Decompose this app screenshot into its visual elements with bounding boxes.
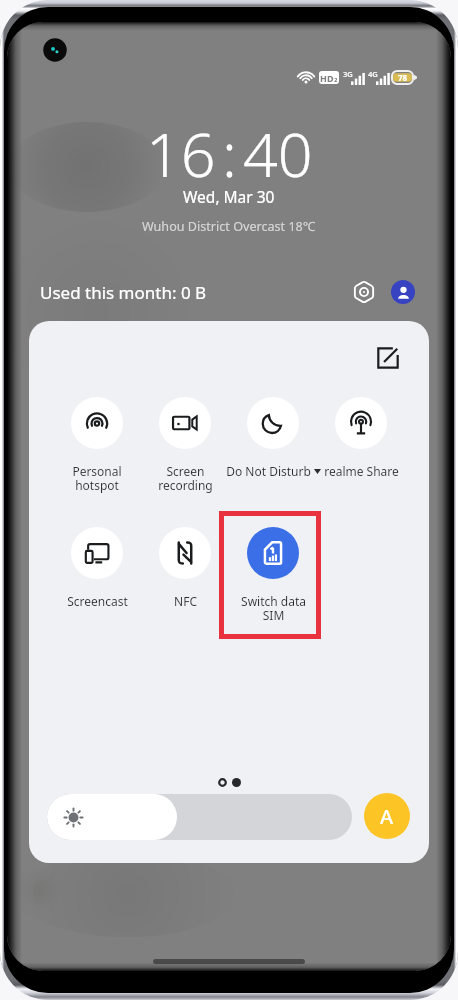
staticText: NFC <box>174 593 197 609</box>
staticText: Screen recording <box>158 463 213 494</box>
staticText: realme Share <box>324 463 399 479</box>
button[interactable]: Do Not Disturb <box>229 397 317 495</box>
button[interactable]: Screen recording <box>141 397 229 495</box>
staticText: A <box>380 803 394 830</box>
staticText: 4G <box>368 69 378 79</box>
staticText: Do Not Disturb <box>226 463 311 479</box>
staticText: : <box>222 112 237 195</box>
button[interactable]: Brightness <box>47 794 352 840</box>
staticText: Used this month: 0 B <box>40 281 207 304</box>
button[interactable]: NFC <box>141 527 229 625</box>
button[interactable]: Account <box>391 280 415 304</box>
button[interactable]: Settings <box>352 280 376 304</box>
staticText: Wed, Mar 30 <box>183 186 275 207</box>
button[interactable]: Screencast <box>53 527 141 625</box>
staticText: HD <box>320 72 334 84</box>
staticText: Screencast <box>67 593 128 609</box>
button[interactable]: A <box>364 793 410 839</box>
button[interactable]: Switch data SIM <box>229 527 317 625</box>
button[interactable]: Personal hotspot <box>53 397 141 495</box>
staticText: Personal hotspot <box>72 463 122 494</box>
button[interactable]: realme Share <box>317 397 405 495</box>
staticText: Wuhou District Overcast 18℃ <box>142 218 316 235</box>
staticText: Switch data SIM <box>241 593 306 624</box>
staticText: 40 <box>243 112 313 195</box>
staticText: 16 <box>146 112 216 195</box>
staticText: 2 <box>334 76 338 84</box>
staticText: 3G <box>343 69 353 79</box>
staticText: 78 <box>398 72 408 83</box>
button[interactable]: Edit <box>377 347 399 369</box>
